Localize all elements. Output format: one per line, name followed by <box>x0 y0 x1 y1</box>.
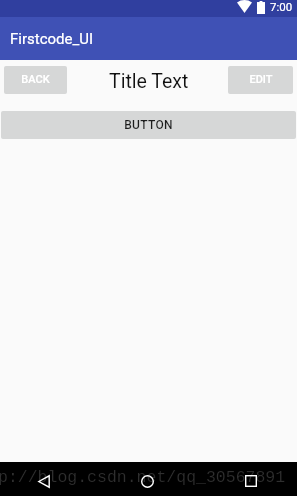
staticText: 7:00 <box>270 0 293 13</box>
staticText: BUTTON <box>124 118 173 132</box>
button[interactable]: EDIT <box>228 66 293 94</box>
staticText: Firstcode_UI <box>10 30 94 48</box>
button[interactable]: Home <box>133 467 161 495</box>
button[interactable]: Recents <box>237 467 265 495</box>
button[interactable]: BACK <box>4 66 67 94</box>
staticText: BACK <box>21 73 50 86</box>
staticText: Title Text <box>109 70 189 93</box>
button[interactable]: BUTTON <box>1 111 296 139</box>
staticText: EDIT <box>249 73 273 86</box>
staticText: p://blog.csdn.net/qq_30567891 <box>0 468 286 487</box>
button[interactable]: Back <box>30 467 58 495</box>
